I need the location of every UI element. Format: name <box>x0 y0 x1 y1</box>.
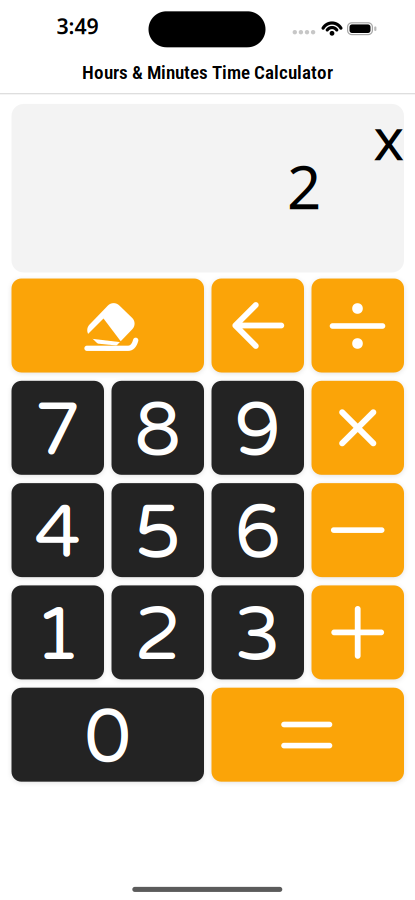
staticText: 2 <box>134 590 181 680</box>
button[interactable]: 9 <box>211 381 304 475</box>
staticText: 4 <box>34 488 81 578</box>
button[interactable] <box>11 278 204 372</box>
button[interactable]: 0 <box>11 688 204 782</box>
staticText: 5 <box>134 488 181 578</box>
button[interactable]: 5 <box>111 483 204 577</box>
button[interactable] <box>311 483 404 577</box>
button[interactable] <box>311 585 404 679</box>
staticText: 1 <box>34 590 81 680</box>
button[interactable]: 6 <box>211 483 304 577</box>
staticText: 2 <box>287 146 321 226</box>
button[interactable]: 7 <box>11 381 104 475</box>
button[interactable] <box>311 381 404 475</box>
staticText: Hours & Minutes Time Calculator <box>82 61 333 84</box>
button[interactable] <box>211 688 404 782</box>
staticText: 3:49 <box>56 12 98 40</box>
button[interactable]: 4 <box>11 483 104 577</box>
button[interactable]: 2 <box>111 585 204 679</box>
staticText: 0 <box>84 693 131 783</box>
button[interactable] <box>311 278 404 372</box>
button[interactable]: 3 <box>211 585 304 679</box>
button[interactable] <box>211 278 304 372</box>
button[interactable]: 1 <box>11 585 104 679</box>
staticText: 3 <box>234 590 281 680</box>
staticText: 7 <box>34 386 81 476</box>
staticText: 6 <box>234 488 281 578</box>
staticText: 9 <box>234 386 281 476</box>
staticText: x <box>373 98 404 176</box>
staticText: 8 <box>134 386 181 476</box>
button[interactable]: 8 <box>111 381 204 475</box>
